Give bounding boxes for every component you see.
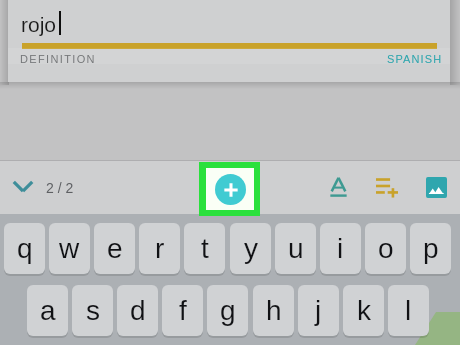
button[interactable]: i <box>320 223 361 274</box>
button[interactable]: h <box>253 285 294 336</box>
staticText: 2 / 2 <box>46 180 74 196</box>
button[interactable]: j <box>298 285 339 336</box>
staticText: t <box>201 233 209 264</box>
staticText: o <box>378 233 394 264</box>
button[interactable]: Add to list <box>365 164 409 208</box>
button[interactable]: q <box>4 223 45 274</box>
staticText: p <box>423 233 439 264</box>
button[interactable]: l <box>388 285 429 336</box>
staticText: e <box>107 233 123 264</box>
button[interactable]: a <box>27 285 68 336</box>
button[interactable]: w <box>49 223 90 274</box>
staticText: s <box>86 295 100 326</box>
staticText: h <box>266 295 282 326</box>
staticText: u <box>288 233 304 264</box>
button[interactable]: p <box>410 223 451 274</box>
button[interactable]: k <box>343 285 384 336</box>
button[interactable]: g <box>207 285 248 336</box>
button[interactable]: e <box>94 223 135 274</box>
button[interactable]: o <box>365 223 406 274</box>
staticText: a <box>40 295 56 326</box>
button[interactable]: d <box>117 285 158 336</box>
staticText: q <box>17 233 33 264</box>
staticText: f <box>179 295 187 326</box>
staticText: y <box>244 233 258 264</box>
button[interactable]: u <box>275 223 316 274</box>
staticText: r <box>155 233 165 264</box>
button[interactable]: Add card <box>199 162 260 216</box>
button[interactable]: t <box>184 223 225 274</box>
button[interactable]: s <box>72 285 113 336</box>
staticText: DEFINITION <box>20 53 96 65</box>
staticText: SPANISH <box>387 53 443 65</box>
button[interactable]: Collapse <box>6 169 40 203</box>
button[interactable]: y <box>230 223 271 274</box>
staticText: rojo <box>21 13 57 36</box>
staticText: k <box>357 295 371 326</box>
button[interactable]: Add image <box>414 165 458 209</box>
staticText: g <box>220 295 236 326</box>
button[interactable]: f <box>162 285 203 336</box>
button[interactable]: Text formatting <box>316 165 360 209</box>
staticText: w <box>59 233 80 264</box>
button[interactable]: r <box>139 223 180 274</box>
staticText: i <box>337 233 344 264</box>
staticText: l <box>405 295 412 326</box>
staticText: d <box>130 295 146 326</box>
staticText: j <box>315 295 322 326</box>
